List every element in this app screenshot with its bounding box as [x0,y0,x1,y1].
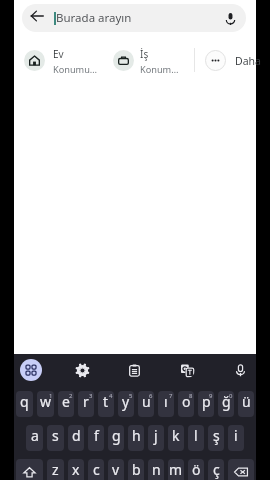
staticText: s [52,426,59,445]
staticText: ğ [222,392,231,411]
button[interactable]: k [168,425,184,451]
staticText: v [112,460,120,479]
button[interactable]: h [128,425,144,451]
staticText: j [154,426,158,445]
staticText: t [103,392,109,411]
button[interactable]: Voice input [232,362,248,378]
button[interactable]: r [78,391,94,417]
button[interactable]: Shift [16,459,43,480]
staticText: ş [213,426,220,445]
staticText: u [142,392,151,411]
staticText: k [172,426,180,445]
staticText: x [72,460,80,479]
button[interactable]: Apps [20,359,42,381]
staticText: 2 [69,392,73,400]
button[interactable]: i [228,425,244,451]
button[interactable]: Voice search [218,6,242,30]
button[interactable]: Back [25,4,49,28]
button[interactable]: p [198,391,214,417]
staticText: 3 [89,392,93,400]
button[interactable]: t [98,391,114,417]
staticText: r [83,392,89,411]
button[interactable]: ç [208,459,224,480]
staticText: ç [213,460,220,479]
staticText: 5 [129,392,133,400]
button[interactable]: İş [140,47,188,76]
button[interactable]: Backspace [228,459,254,480]
staticText: 1 [49,392,53,400]
button[interactable]: y [118,391,134,417]
staticText: f [94,426,99,445]
staticText: İş [140,47,149,61]
button[interactable]: a [26,425,43,451]
staticText: m [169,460,183,479]
button[interactable]: ı [158,391,174,417]
button[interactable]: Settings [74,362,90,378]
staticText: n [152,460,161,479]
button[interactable]: l [188,425,204,451]
button[interactable]: Translate [179,362,195,378]
button[interactable]: z [47,459,64,480]
staticText: g [112,426,121,445]
staticText: p [202,392,211,411]
button[interactable]: u [138,391,154,417]
staticText: 4 [109,392,113,400]
staticText: l [194,426,198,445]
button[interactable]: w [37,391,54,417]
staticText: z [52,460,59,479]
staticText: i [234,426,238,445]
staticText: Konumu… [53,63,98,76]
staticText: 7 [169,392,173,400]
staticText: h [132,426,141,445]
staticText: Burada arayın [56,10,132,26]
staticText: w [40,392,52,411]
staticText: ı [164,392,168,411]
button[interactable]: n [148,459,164,480]
button[interactable]: c [88,459,104,480]
staticText: b [132,460,141,479]
staticText: d [72,426,81,445]
button[interactable]: e [58,391,74,417]
button[interactable]: f [88,425,104,451]
staticText: 8 [189,392,193,400]
button[interactable]: o [178,391,194,417]
staticText: ü [242,392,251,411]
button[interactable]: m [168,459,184,480]
button[interactable]: q [16,391,33,417]
staticText: Daha [235,54,261,68]
staticText: ö [192,460,201,479]
staticText: o [182,392,191,411]
button[interactable]: Ev [53,47,101,76]
button[interactable]: b [128,459,144,480]
staticText: 0 [229,392,233,400]
button[interactable]: ö [188,459,204,480]
button[interactable]: Back [22,4,246,32]
button[interactable]: g [108,425,124,451]
button[interactable]: s [47,425,64,451]
staticText: Konum… [140,63,179,76]
staticText: 6 [149,392,153,400]
button[interactable]: ü [238,391,254,417]
button[interactable]: j [148,425,164,451]
staticText: a [31,426,39,445]
button[interactable]: Shortcut [113,50,134,71]
staticText: q [20,392,29,411]
staticText: Ev [53,47,64,61]
button[interactable]: ğ [218,391,234,417]
button[interactable]: v [108,459,124,480]
staticText: 9 [209,392,213,400]
button[interactable]: x [68,459,84,480]
staticText: y [122,392,130,411]
button[interactable]: ş [208,425,224,451]
staticText: e [62,392,70,411]
button[interactable]: Clipboard [126,362,142,378]
staticText: c [93,460,100,479]
button[interactable]: Shortcut [24,50,45,71]
button[interactable]: d [68,425,84,451]
button[interactable]: Daha [205,49,261,72]
